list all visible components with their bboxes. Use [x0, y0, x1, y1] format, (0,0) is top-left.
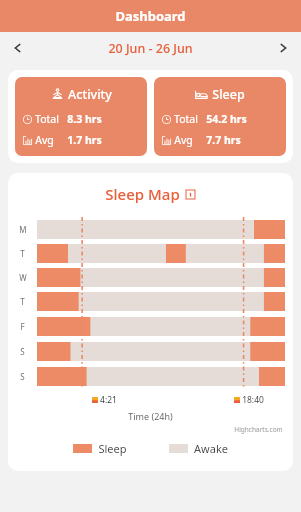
staticText: 20 Jun - 26 Jun	[108, 40, 193, 57]
staticText: Avg	[35, 133, 54, 147]
staticText: S	[20, 346, 25, 357]
button[interactable]: Sleep	[71, 439, 129, 458]
staticText: Dashboard	[115, 7, 186, 25]
button[interactable]: Previous week	[0, 32, 34, 64]
staticText: 18:40	[242, 394, 264, 406]
staticText: Awake	[194, 441, 228, 456]
staticText: Avg	[174, 133, 193, 147]
staticText: T	[20, 296, 25, 307]
staticText: 1.7 hrs	[67, 133, 102, 147]
staticText: Sleep Map	[105, 184, 180, 204]
staticText: 7.7 hrs	[206, 133, 241, 147]
staticText: Time (24h)	[128, 410, 173, 422]
button[interactable]: Sleep	[154, 77, 286, 156]
staticText: 54.2 hrs	[206, 112, 247, 126]
staticText: F	[20, 321, 25, 332]
staticText: Highcharts.com	[234, 425, 283, 434]
staticText: Activity	[68, 86, 112, 103]
staticText: S	[20, 371, 25, 382]
staticText: Sleep	[98, 441, 127, 456]
staticText: T	[20, 248, 25, 259]
button[interactable]: Info	[184, 188, 196, 200]
staticText: 4:21	[100, 394, 117, 406]
staticText: M	[19, 224, 27, 235]
staticText: Total	[35, 112, 59, 126]
staticText: Sleep	[212, 86, 245, 103]
button[interactable]: Activity	[15, 77, 147, 156]
button[interactable]: 20 Jun - 26 Jun	[34, 32, 267, 64]
staticText: Total	[174, 112, 198, 126]
button[interactable]: Next week	[267, 32, 301, 64]
staticText: 8.3 hrs	[67, 112, 102, 126]
staticText: W	[19, 272, 27, 283]
button[interactable]: Awake	[167, 439, 230, 458]
